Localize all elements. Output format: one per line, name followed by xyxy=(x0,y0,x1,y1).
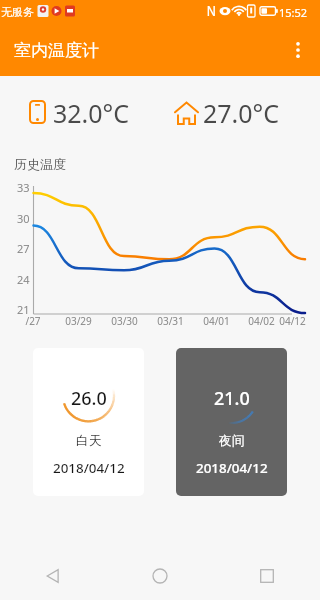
staticText: 30 xyxy=(17,211,30,226)
staticText: 历史温度 xyxy=(14,156,66,172)
staticText: 27.0°C xyxy=(203,96,280,130)
staticText: 26.0 xyxy=(71,386,107,411)
staticText: 03/29 xyxy=(65,314,92,328)
staticText: 2018/04/12 xyxy=(196,459,268,477)
staticText: 白天 xyxy=(76,433,102,449)
staticText: 04/02 xyxy=(248,314,275,328)
staticText: 21 xyxy=(17,302,30,317)
button[interactable]: Home xyxy=(106,552,213,600)
staticText: 21.0 xyxy=(214,386,250,411)
button[interactable]: More options xyxy=(276,24,320,76)
button[interactable]: Back xyxy=(0,552,106,600)
button[interactable]: Recents xyxy=(213,552,320,600)
staticText: 27 xyxy=(17,241,30,256)
staticText: 室内温度计 xyxy=(14,40,99,61)
staticText: 32.0°C xyxy=(53,96,130,130)
staticText: 03/31 xyxy=(157,314,184,328)
staticText: 33 xyxy=(17,180,30,195)
staticText: 15:52 xyxy=(279,5,308,20)
staticText: /27 xyxy=(25,314,41,328)
staticText: 04/01 xyxy=(203,314,230,328)
button[interactable]: 26.0 xyxy=(33,348,144,496)
staticText: 03/30 xyxy=(111,314,138,328)
staticText: 无服务 xyxy=(1,5,34,19)
button[interactable]: 21.0 xyxy=(176,348,287,496)
staticText: 2018/04/12 xyxy=(53,459,125,477)
staticText: 24 xyxy=(17,272,30,287)
staticText: 04/12 xyxy=(279,314,306,328)
staticText: 夜间 xyxy=(219,433,245,449)
